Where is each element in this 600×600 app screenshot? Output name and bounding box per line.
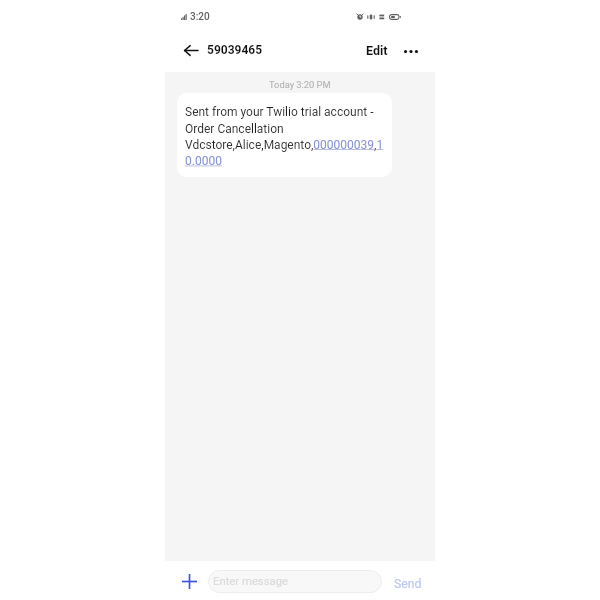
- button[interactable]: Send: [382, 566, 435, 596]
- button[interactable]: Edit: [360, 35, 398, 66]
- staticText: 59039465: [207, 43, 263, 57]
- button[interactable]: More options: [398, 38, 424, 64]
- staticText: Edit: [366, 43, 388, 58]
- staticText: 3:20: [190, 11, 210, 23]
- button[interactable]: Enter message: [208, 570, 382, 593]
- button[interactable]: Sent from your Twilio trial account - Or…: [177, 93, 392, 177]
- staticText: Enter message: [213, 575, 289, 588]
- staticText: Sent from your Twilio trial account - Or…: [185, 105, 385, 168]
- button[interactable]: Back: [178, 37, 204, 63]
- button[interactable]: Add attachment: [176, 568, 202, 594]
- staticText: Send: [394, 577, 422, 591]
- staticText: Today 3:20 PM: [269, 79, 331, 90]
